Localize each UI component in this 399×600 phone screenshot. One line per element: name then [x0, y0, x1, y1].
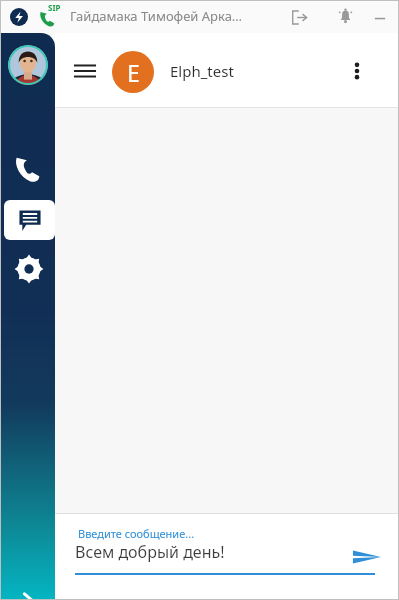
button[interactable]: Chats [4, 200, 55, 240]
button[interactable]: Menu [73, 59, 97, 83]
button[interactable]: More options [343, 57, 371, 85]
button[interactable]: Notifications [337, 8, 354, 25]
staticText: Гайдамака Тимофей Арка… [70, 7, 243, 25]
button[interactable]: Settings [14, 254, 44, 284]
button[interactable]: Expand menu [13, 586, 43, 600]
staticText: Elph_test [170, 61, 234, 81]
button[interactable]: Calls [14, 155, 42, 183]
button[interactable]: Minimize [372, 8, 388, 24]
staticText: Всем добрый день! [75, 541, 225, 563]
staticText: SIP [48, 2, 61, 13]
button[interactable]: Send [351, 541, 383, 573]
staticText: Введите сообщение... [78, 526, 195, 541]
button[interactable]: Всем добрый день! [75, 541, 345, 571]
button[interactable]: Contact avatar [112, 51, 154, 93]
button[interactable]: Log out [291, 9, 308, 26]
staticText: E [127, 57, 140, 88]
other: App logo [10, 8, 28, 26]
other: SIP [37, 6, 61, 28]
button[interactable]: Profile [8, 45, 48, 85]
